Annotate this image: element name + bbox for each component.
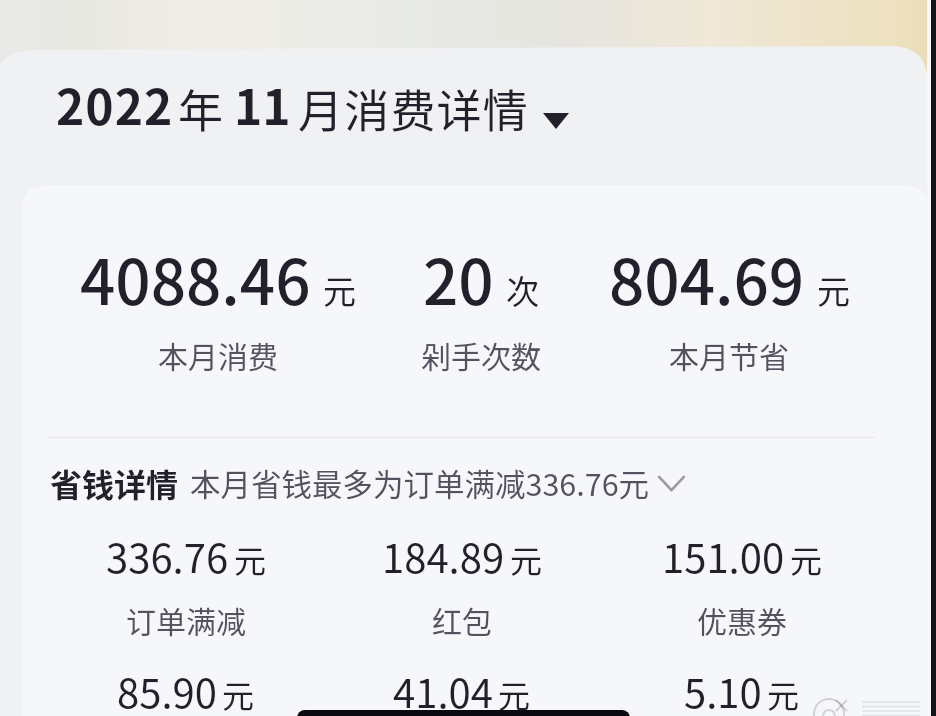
staticText: 804.69	[609, 233, 805, 323]
button[interactable]: 85.90	[6, 662, 366, 716]
staticText: 11	[234, 69, 291, 139]
button[interactable]: 804.69	[549, 233, 909, 323]
staticText: 元	[498, 671, 531, 716]
button[interactable]: 5.10	[562, 662, 922, 716]
staticText: 85.90	[117, 662, 217, 716]
staticText: 剁手次数	[301, 333, 661, 376]
staticText: 元	[767, 671, 800, 716]
staticText: 订单满减	[6, 598, 366, 641]
staticText: 336.76	[106, 527, 229, 585]
staticText: 元	[323, 266, 356, 314]
staticText: 184.89	[382, 527, 505, 585]
staticText: 本月节省	[549, 333, 909, 376]
button[interactable]: 2022	[56, 71, 569, 141]
staticText: 红包	[282, 598, 642, 641]
other: Expand details	[658, 476, 685, 491]
staticText: 元	[510, 536, 543, 582]
button[interactable]: 20	[301, 233, 661, 323]
button[interactable]: 184.89	[282, 527, 642, 585]
staticText: 元	[817, 266, 850, 314]
button[interactable]: 4088.46	[38, 233, 398, 323]
staticText: 省钱详情	[50, 460, 179, 506]
staticText: 2022	[56, 69, 174, 139]
staticText: 5.10	[684, 662, 762, 716]
staticText: 41.04	[393, 662, 493, 716]
staticText: 月消费详情	[298, 76, 530, 141]
staticText: 151.00	[662, 527, 785, 585]
staticText: 20	[423, 233, 494, 323]
staticText: 本月消费	[38, 333, 398, 376]
button[interactable]: 省钱详情	[50, 460, 685, 506]
staticText: 年	[178, 76, 224, 141]
staticText: 次	[506, 266, 539, 314]
staticText: 元	[222, 671, 255, 716]
other: Choose month	[543, 113, 569, 129]
staticText: 元	[790, 536, 823, 582]
button[interactable]: 41.04	[282, 662, 642, 716]
button[interactable]: 336.76	[6, 527, 366, 585]
staticText: 优惠券	[562, 598, 922, 641]
button[interactable]: 151.00	[562, 527, 922, 585]
staticText: 元	[234, 536, 267, 582]
staticText: 4088.46	[80, 233, 311, 323]
staticText: 本月省钱最多为订单满减336.76元	[190, 461, 650, 505]
